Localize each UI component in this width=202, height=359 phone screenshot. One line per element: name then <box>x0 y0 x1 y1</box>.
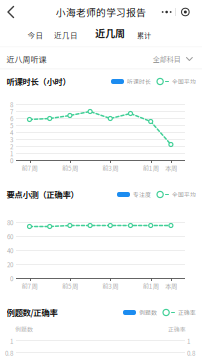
staticText: 全部科目 <box>153 54 181 64</box>
staticText: 全国平均 <box>172 77 196 86</box>
staticText: 20 <box>7 260 13 269</box>
staticText: 60 <box>7 232 13 241</box>
button[interactable]: 累计 <box>132 25 156 45</box>
staticText: 要点小测（正确率） <box>6 188 78 200</box>
staticText: 前1周 <box>143 281 159 291</box>
staticText: 例题数 <box>139 308 157 317</box>
button[interactable]: 近几周 <box>92 23 128 43</box>
staticText: 本周 <box>165 163 177 173</box>
staticText: 前5周 <box>62 281 78 291</box>
staticText: 累计 <box>137 30 151 40</box>
staticText: 前3周 <box>102 281 118 291</box>
staticText: 近几日 <box>54 30 78 40</box>
staticText: 例题数/正确率 <box>6 306 57 318</box>
staticText: 5 <box>10 121 13 130</box>
staticText: 专注度 <box>133 190 151 199</box>
staticText: 40 <box>7 246 13 255</box>
staticText: 前3周 <box>102 163 118 173</box>
button[interactable]: 全部科目 <box>153 54 193 64</box>
staticText: 0.8 <box>5 348 13 357</box>
staticText: 0.8 <box>187 348 195 357</box>
staticText: 前7周 <box>21 281 37 291</box>
staticText: 80 <box>7 218 13 227</box>
staticText: 前5周 <box>62 163 78 173</box>
staticText: 近八周听课 <box>6 53 46 65</box>
staticText: 听课时长 <box>127 77 151 86</box>
staticText: 1 <box>10 336 13 345</box>
staticText: 2 <box>10 142 13 151</box>
staticText: 全国平均 <box>172 190 196 199</box>
staticText: 今日 <box>27 30 43 40</box>
staticText: 近几周 <box>95 26 125 40</box>
staticText: 听课时长（小时） <box>6 75 70 87</box>
staticText: 0 <box>10 274 13 283</box>
button[interactable]: 更多 <box>158 4 195 19</box>
staticText: 7 <box>10 107 13 116</box>
staticText: 小海老师的学习报告 <box>56 5 146 19</box>
staticText: 前7周 <box>21 163 37 173</box>
staticText: 6 <box>10 114 13 123</box>
button[interactable]: 近几日 <box>51 25 81 45</box>
staticText: 8 <box>10 100 13 109</box>
staticText: 0 <box>10 156 13 165</box>
staticText: 3 <box>10 135 13 144</box>
button[interactable]: 返回 <box>0 0 28 24</box>
staticText: 例题数 <box>15 325 33 333</box>
staticText: 1 <box>187 336 190 345</box>
staticText: 前1周 <box>143 163 159 173</box>
staticText: 正确率 <box>178 308 196 317</box>
staticText: 1 <box>10 149 13 158</box>
button[interactable]: 今日 <box>23 25 47 45</box>
staticText: 4 <box>10 128 13 137</box>
staticText: 本周 <box>165 281 177 291</box>
staticText: 正确率 <box>168 325 186 333</box>
